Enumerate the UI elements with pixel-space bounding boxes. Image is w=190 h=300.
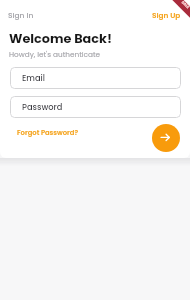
button[interactable]: Sign In	[7, 8, 35, 22]
staticText: Sign Up	[152, 10, 181, 20]
staticText: Howdy, let's authenticate	[9, 49, 101, 59]
button[interactable]: Forgot Password?	[15, 127, 81, 139]
button[interactable]: Sign Up	[151, 8, 182, 22]
button[interactable]: Continue	[152, 124, 180, 152]
staticText: Welcome Back!	[9, 30, 112, 48]
staticText: Forgot Password?	[17, 128, 79, 138]
button[interactable]: Password	[10, 96, 181, 118]
staticText: SALE	[181, 0, 190, 9]
staticText: Email	[22, 72, 45, 84]
button[interactable]: Email	[10, 67, 181, 89]
staticText: Password	[22, 101, 63, 113]
staticText: Sign In	[8, 10, 34, 20]
